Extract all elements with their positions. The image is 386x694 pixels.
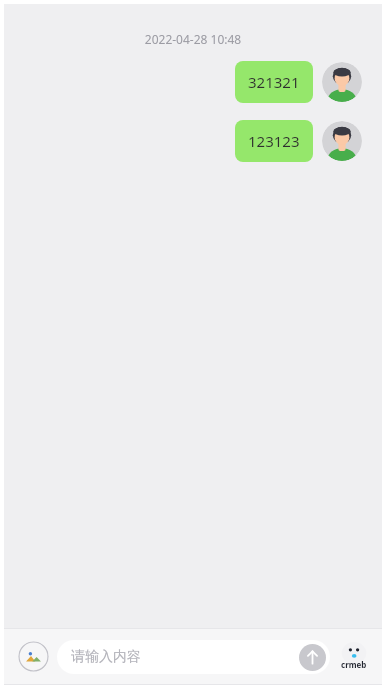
button[interactable]: Send	[299, 644, 326, 671]
button[interactable]: User avatar	[322, 62, 362, 102]
button[interactable]: crmeb	[336, 639, 372, 675]
staticText: 123123	[248, 131, 300, 151]
button[interactable]: 123123	[235, 120, 313, 162]
staticText: 请输入内容	[71, 648, 141, 666]
staticText: 321321	[248, 72, 300, 92]
button[interactable]: Send image	[18, 641, 49, 672]
button[interactable]: 321321	[235, 61, 313, 103]
staticText: crmeb	[341, 659, 367, 670]
staticText: 2022-04-28 10:48	[4, 31, 382, 47]
button[interactable]: 请输入内容	[57, 640, 330, 674]
button[interactable]: User avatar	[322, 121, 362, 161]
